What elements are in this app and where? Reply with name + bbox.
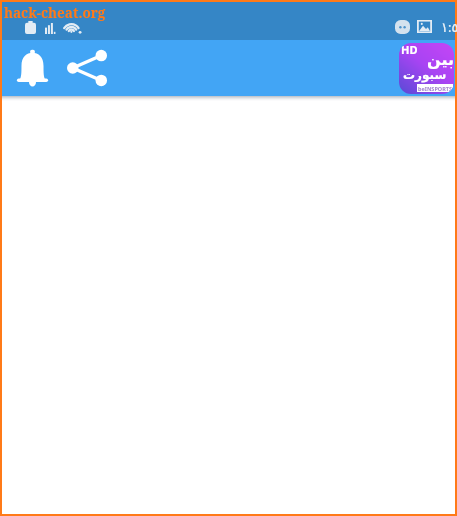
staticText: hack-cheat.org bbox=[4, 4, 106, 22]
staticText: بين bbox=[427, 50, 454, 69]
staticText: beINSPORTS bbox=[418, 85, 452, 92]
button[interactable]: Share bbox=[59, 40, 115, 96]
button[interactable]: Notifications bbox=[4, 40, 60, 96]
button[interactable]: beIN Sports bbox=[399, 43, 454, 94]
staticText: HD bbox=[401, 43, 418, 57]
staticText: ١:٥٠ bbox=[441, 18, 457, 36]
staticText: سبورت bbox=[403, 68, 447, 82]
